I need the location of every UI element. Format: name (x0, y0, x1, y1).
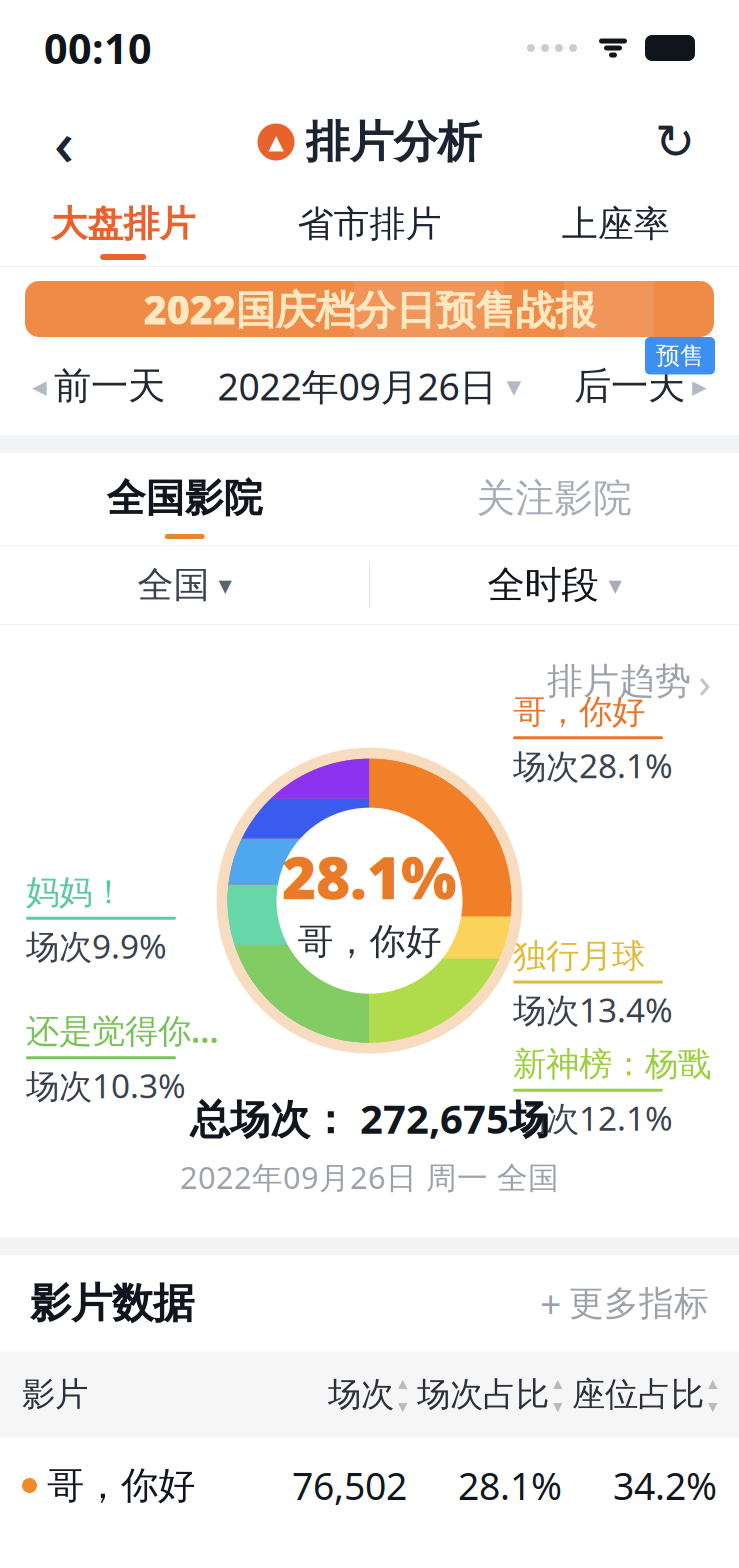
staticText: 后一天 (574, 363, 685, 409)
button[interactable]: 全时段 (370, 546, 739, 624)
staticText: 场次9.9% (26, 924, 167, 968)
staticText: 76,502 (292, 1461, 407, 1510)
staticText: 2022国庆档分日预售战报 (143, 282, 595, 335)
staticText: 更多指标 (569, 1282, 709, 1325)
staticText: 大盘排片 (51, 202, 195, 246)
staticText: ▾ (608, 570, 621, 600)
staticText: 2022年09月26日 周一 全国 (180, 1157, 559, 1197)
staticText: 预售 (656, 341, 704, 370)
staticText: ▾ (218, 570, 231, 600)
button[interactable]: 排片趋势 (547, 625, 739, 716)
staticText: 排片趋势 (547, 659, 691, 703)
staticText: ‹ (54, 101, 74, 183)
button[interactable]: 2022年09月26日 (217, 347, 521, 425)
staticText: 全国影院 (107, 474, 263, 522)
staticText: ↻ (655, 115, 695, 169)
staticText: 哥，你好 (297, 919, 441, 964)
staticText: 哥，你好 (47, 1463, 195, 1508)
staticText: ▾ (553, 1395, 562, 1417)
staticText: 全国 (137, 563, 209, 607)
button[interactable]: 全国影院 (0, 453, 369, 545)
staticText: 影片 (22, 1374, 88, 1415)
staticText: 排片分析 (305, 115, 481, 169)
staticText: 场次12.1% (513, 1096, 673, 1140)
button[interactable]: ◂ (32, 349, 165, 423)
staticText: + (540, 1279, 561, 1328)
staticText: 28.1% (282, 838, 457, 915)
button[interactable]: 大盘排片 (0, 188, 246, 266)
staticText: 场次占比 (417, 1374, 549, 1415)
staticText: ◂ (32, 369, 47, 403)
staticText: 影片数据 (30, 1278, 194, 1329)
staticText: ▴ (398, 1372, 407, 1393)
button[interactable]: 场次占比 (407, 1351, 562, 1437)
staticText: 场次10.3% (26, 1063, 186, 1108)
button[interactable]: 上座率 (493, 188, 739, 266)
staticText: 还是觉得你… (26, 1008, 219, 1052)
button[interactable]: 哥，你好 (0, 1437, 739, 1533)
button[interactable]: 座位占比 (562, 1351, 717, 1437)
staticText: ▴ (553, 1372, 562, 1393)
staticText: 独行月球 (513, 936, 645, 976)
staticText: ▲ (268, 131, 283, 153)
staticText: 全时段 (487, 562, 598, 608)
staticText: 2022年09月26日 (217, 361, 496, 411)
button[interactable]: 关注影院 (369, 453, 739, 545)
staticText: ▸ (692, 369, 707, 403)
staticText: › (698, 653, 711, 710)
button[interactable]: 场次 (252, 1351, 407, 1437)
staticText: 新神榜：杨戬 (513, 1044, 711, 1085)
staticText: 座位占比 (572, 1374, 704, 1415)
button[interactable]: Back (28, 106, 100, 178)
staticText: ▾ (398, 1395, 407, 1417)
button[interactable]: 2022国庆档分日预售战报 (0, 267, 739, 337)
staticText: ▾ (506, 369, 521, 403)
staticText: 场次 (328, 1374, 394, 1415)
staticText: 妈妈！ (26, 872, 125, 913)
staticText: 上座率 (562, 202, 670, 246)
staticText: 哥，你好 (513, 691, 645, 732)
staticText: 省市排片 (297, 202, 441, 246)
button[interactable]: Share (639, 106, 711, 178)
staticText: 前一天 (54, 363, 165, 409)
button[interactable]: 全国 (0, 546, 369, 624)
staticText: 关注影院 (476, 474, 632, 522)
button[interactable]: + (540, 1279, 709, 1328)
staticText: 34.2% (613, 1461, 717, 1510)
staticText: ▴ (708, 1372, 717, 1393)
staticText: 场次28.1% (513, 743, 673, 788)
staticText: 28.1% (458, 1461, 562, 1510)
staticText: 总场次： 272,675场 (190, 1092, 549, 1145)
staticText: ▾ (708, 1395, 717, 1417)
staticText: 场次13.4% (513, 987, 673, 1032)
button[interactable]: 后一天 (574, 349, 707, 423)
button[interactable]: 省市排片 (246, 188, 493, 266)
staticText: 00:10 (44, 21, 152, 75)
